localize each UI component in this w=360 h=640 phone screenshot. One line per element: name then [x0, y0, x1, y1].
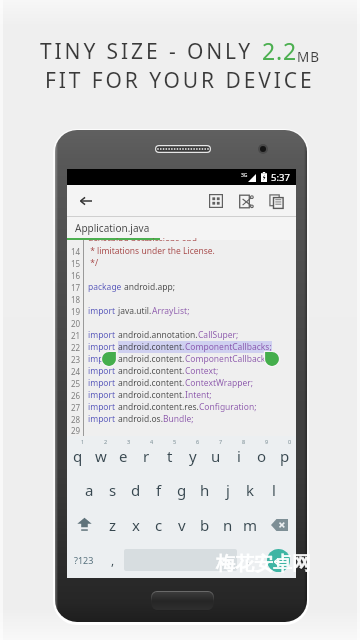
button[interactable]: 1: [67, 436, 89, 472]
staticText: u: [211, 446, 221, 466]
staticText: 17: [71, 282, 81, 293]
button[interactable]: .: [237, 542, 260, 578]
button[interactable]: 7: [204, 436, 227, 472]
button[interactable]: Shift: [67, 507, 101, 542]
staticText: d: [131, 480, 141, 500]
button[interactable]: l: [262, 472, 285, 507]
staticText: android.os.: [118, 413, 163, 425]
button[interactable]: Back: [73, 188, 99, 214]
staticText: * limitations under the License.: [88, 245, 215, 257]
button[interactable]: ?123: [67, 542, 101, 578]
staticText: android.content.: [118, 365, 185, 377]
staticText: 21: [71, 330, 81, 341]
button[interactable]: z: [101, 507, 124, 542]
staticText: Intent;: [185, 389, 212, 401]
staticText: 27: [71, 402, 81, 413]
staticText: 28: [71, 414, 81, 425]
staticText: 18: [71, 294, 81, 305]
button[interactable]: h: [193, 472, 216, 507]
staticText: 5:37: [271, 171, 290, 184]
staticText: android.content.: [118, 353, 185, 365]
button[interactable]: 3: [112, 436, 135, 472]
staticText: android.content.res.: [118, 401, 199, 413]
staticText: b: [200, 515, 210, 535]
staticText: 15: [71, 258, 81, 269]
staticText: ArrayList;: [152, 305, 190, 317]
button[interactable]: d: [124, 472, 147, 507]
button[interactable]: f: [147, 472, 170, 507]
staticText: import: [88, 413, 118, 425]
button[interactable]: Backspace: [262, 507, 296, 542]
button[interactable]: 8: [227, 436, 250, 472]
button[interactable]: ,: [101, 542, 124, 578]
staticText: r: [143, 446, 150, 466]
staticText: 3: [127, 438, 131, 445]
button[interactable]: s: [101, 472, 124, 507]
button[interactable]: Insert: [202, 187, 230, 215]
staticText: import: [88, 305, 118, 317]
staticText: 1: [81, 438, 85, 445]
button[interactable]: 4: [135, 436, 158, 472]
button[interactable]: 2: [89, 436, 112, 472]
button[interactable]: Enter: [260, 542, 296, 578]
staticText: 0: [288, 438, 292, 445]
staticText: 22: [71, 342, 81, 353]
button[interactable]: 6: [181, 436, 204, 472]
staticText: y: [189, 446, 197, 466]
staticText: 16: [71, 270, 81, 281]
button[interactable]: 5: [158, 436, 181, 472]
staticText: m: [243, 515, 258, 535]
staticText: 29: [71, 425, 81, 436]
staticText: 7: [219, 438, 223, 445]
staticText: 梅花安卓网: [216, 552, 311, 576]
staticText: ComponentCallbacks2;: [185, 353, 277, 365]
staticText: n: [223, 515, 233, 535]
button[interactable]: Application.java: [67, 217, 160, 240]
staticText: 5: [173, 438, 177, 445]
button[interactable]: 0: [273, 436, 296, 472]
staticText: Configuration;: [199, 401, 257, 413]
staticText: 8: [242, 438, 246, 445]
button[interactable]: b: [193, 507, 216, 542]
staticText: 3G: [241, 172, 248, 179]
staticText: ContextWrapper;: [185, 377, 253, 389]
staticText: 14: [71, 246, 81, 257]
staticText: package: [88, 281, 124, 293]
staticText: import: [88, 389, 118, 401]
button[interactable]: 9: [250, 436, 273, 472]
staticText: t: [167, 446, 173, 466]
button[interactable]: m: [239, 507, 262, 542]
button[interactable]: Cut: [232, 187, 260, 215]
staticText: 9: [265, 438, 269, 445]
button[interactable]: x: [124, 507, 147, 542]
staticText: 4: [150, 438, 154, 445]
staticText: TINY SIZE - ONLY: [40, 37, 262, 66]
button[interactable]: k: [239, 472, 262, 507]
staticText: 19: [71, 306, 81, 317]
button[interactable]: a: [78, 472, 101, 507]
staticText: ComponentCallbacks;: [185, 341, 272, 353]
staticText: import: [88, 401, 118, 413]
staticText: import: [88, 377, 118, 389]
staticText: f: [156, 480, 162, 500]
button[interactable]: Space: [124, 549, 237, 571]
staticText: 23: [71, 354, 81, 365]
staticText: s: [109, 480, 117, 500]
button[interactable]: n: [216, 507, 239, 542]
button[interactable]: g: [170, 472, 193, 507]
staticText: import: [88, 341, 118, 353]
staticText: android.content.: [118, 377, 185, 389]
button[interactable]: j: [216, 472, 239, 507]
button[interactable]: v: [170, 507, 193, 542]
staticText: 6: [196, 438, 200, 445]
staticText: v: [178, 515, 186, 535]
staticText: FIT FOR YOUR DEVICE: [45, 66, 315, 95]
staticText: c: [155, 515, 163, 535]
staticText: l: [272, 480, 276, 500]
staticText: ,: [111, 552, 115, 568]
staticText: 25: [71, 378, 81, 389]
button[interactable]: Copy: [262, 187, 290, 215]
staticText: 20: [71, 318, 81, 329]
button[interactable]: c: [147, 507, 170, 542]
staticText: .: [247, 552, 251, 568]
